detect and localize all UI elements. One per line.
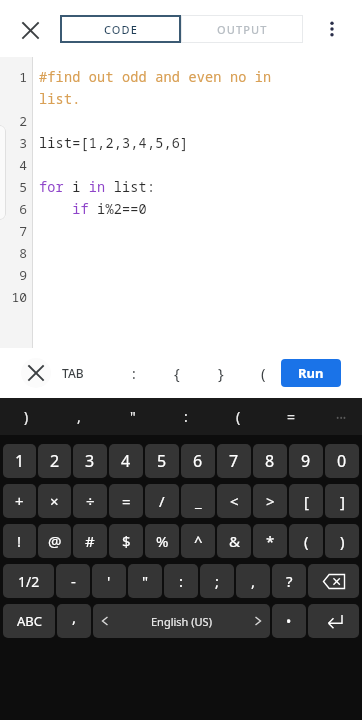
- staticText: ABC: [17, 612, 42, 630]
- button[interactable]: 9: [289, 444, 323, 478]
- button[interactable]: Backspace: [308, 564, 359, 598]
- button[interactable]: <: [217, 484, 251, 518]
- button[interactable]: =: [271, 398, 311, 435]
- button[interactable]: Enter: [308, 604, 359, 638]
- staticText: }: [218, 363, 224, 383]
- staticText: 7: [229, 450, 239, 472]
- staticText: ,: [72, 607, 77, 627]
- button[interactable]: :: [117, 358, 151, 388]
- button[interactable]: @: [38, 524, 71, 558]
- staticText: 5: [157, 450, 167, 472]
- button[interactable]: -: [56, 564, 90, 598]
- staticText: !: [17, 531, 22, 551]
- button[interactable]: 8: [253, 444, 287, 478]
- button[interactable]: :: [164, 564, 198, 598]
- button[interactable]: ): [325, 524, 359, 558]
- staticText: 2: [19, 112, 27, 130]
- staticText: CODE: [104, 22, 138, 37]
- button[interactable]: !: [3, 524, 36, 558]
- staticText: ,: [77, 407, 81, 426]
- button[interactable]: %: [145, 524, 179, 558]
- staticText: ': [107, 571, 111, 591]
- button[interactable]: ×: [38, 484, 71, 518]
- staticText: 6: [193, 450, 203, 472]
- button[interactable]: More symbols: [324, 398, 358, 435]
- button[interactable]: +: [3, 484, 36, 518]
- button[interactable]: >: [253, 484, 287, 518]
- staticText: +: [15, 491, 24, 511]
- button[interactable]: *: [253, 524, 287, 558]
- staticText: 8: [19, 244, 27, 262]
- button[interactable]: /: [145, 484, 179, 518]
- button[interactable]: =: [109, 484, 143, 518]
- button[interactable]: ): [6, 398, 46, 435]
- button[interactable]: (: [246, 358, 280, 388]
- button[interactable]: ABC: [3, 604, 55, 638]
- button[interactable]: }: [204, 358, 238, 388]
- button[interactable]: 1/2: [3, 564, 54, 598]
- button[interactable]: 5: [145, 444, 179, 478]
- staticText: /: [159, 491, 165, 511]
- staticText: _: [195, 491, 202, 511]
- button[interactable]: More options: [316, 13, 348, 45]
- button[interactable]: #: [73, 524, 107, 558]
- button[interactable]: 1: [3, 444, 36, 478]
- button[interactable]: ^: [181, 524, 215, 558]
- button[interactable]: OUTPUT: [181, 15, 303, 43]
- staticText: TAB: [62, 365, 84, 381]
- staticText: Run: [298, 364, 324, 382]
- staticText: <: [230, 491, 239, 511]
- button[interactable]: 0: [325, 444, 359, 478]
- staticText: ;: [215, 571, 220, 591]
- staticText: ): [340, 531, 345, 551]
- staticText: 0: [337, 450, 347, 472]
- button[interactable]: ,: [236, 564, 270, 598]
- button[interactable]: 2: [38, 444, 71, 478]
- button[interactable]: ": [113, 398, 153, 435]
- staticText: 1: [19, 68, 27, 86]
- staticText: ^: [194, 531, 203, 551]
- staticText: 7: [19, 222, 27, 240]
- button[interactable]: 3: [73, 444, 107, 478]
- button[interactable]: •: [272, 604, 306, 638]
- staticText: 2: [50, 450, 60, 472]
- button[interactable]: 4: [109, 444, 143, 478]
- staticText: if i%2==0: [39, 200, 147, 218]
- staticText: (: [304, 531, 309, 551]
- button[interactable]: &: [217, 524, 251, 558]
- staticText: @: [48, 531, 62, 551]
- staticText: 8: [265, 450, 275, 472]
- button[interactable]: ": [128, 564, 162, 598]
- button[interactable]: :: [166, 398, 206, 435]
- staticText: (: [261, 363, 266, 383]
- staticText: list.: [39, 90, 81, 108]
- staticText: $: [122, 531, 131, 551]
- button[interactable]: ,: [57, 604, 91, 638]
- button[interactable]: $: [109, 524, 143, 558]
- button[interactable]: Space: [93, 604, 270, 638]
- button[interactable]: ,: [59, 398, 99, 435]
- button[interactable]: CODE: [60, 15, 181, 43]
- button[interactable]: ]: [325, 484, 359, 518]
- button[interactable]: (: [289, 524, 323, 558]
- button[interactable]: [: [289, 484, 323, 518]
- button[interactable]: ?: [272, 564, 306, 598]
- button[interactable]: (: [218, 398, 258, 435]
- button[interactable]: 6: [181, 444, 215, 478]
- button[interactable]: ÷: [73, 484, 107, 518]
- button[interactable]: ': [92, 564, 126, 598]
- staticText: ?: [286, 571, 293, 591]
- button[interactable]: Close: [14, 14, 46, 46]
- button[interactable]: _: [181, 484, 215, 518]
- button[interactable]: Run: [281, 359, 341, 387]
- button[interactable]: TAB: [56, 358, 90, 388]
- staticText: (: [236, 407, 241, 426]
- staticText: •••: [336, 411, 347, 423]
- button[interactable]: {: [160, 358, 194, 388]
- staticText: ]: [340, 491, 345, 511]
- staticText: •: [286, 612, 292, 631]
- button[interactable]: ;: [200, 564, 234, 598]
- button[interactable]: 7: [217, 444, 251, 478]
- staticText: #find out odd and even no in: [39, 68, 272, 86]
- button[interactable]: Hide keyboard: [21, 358, 51, 388]
